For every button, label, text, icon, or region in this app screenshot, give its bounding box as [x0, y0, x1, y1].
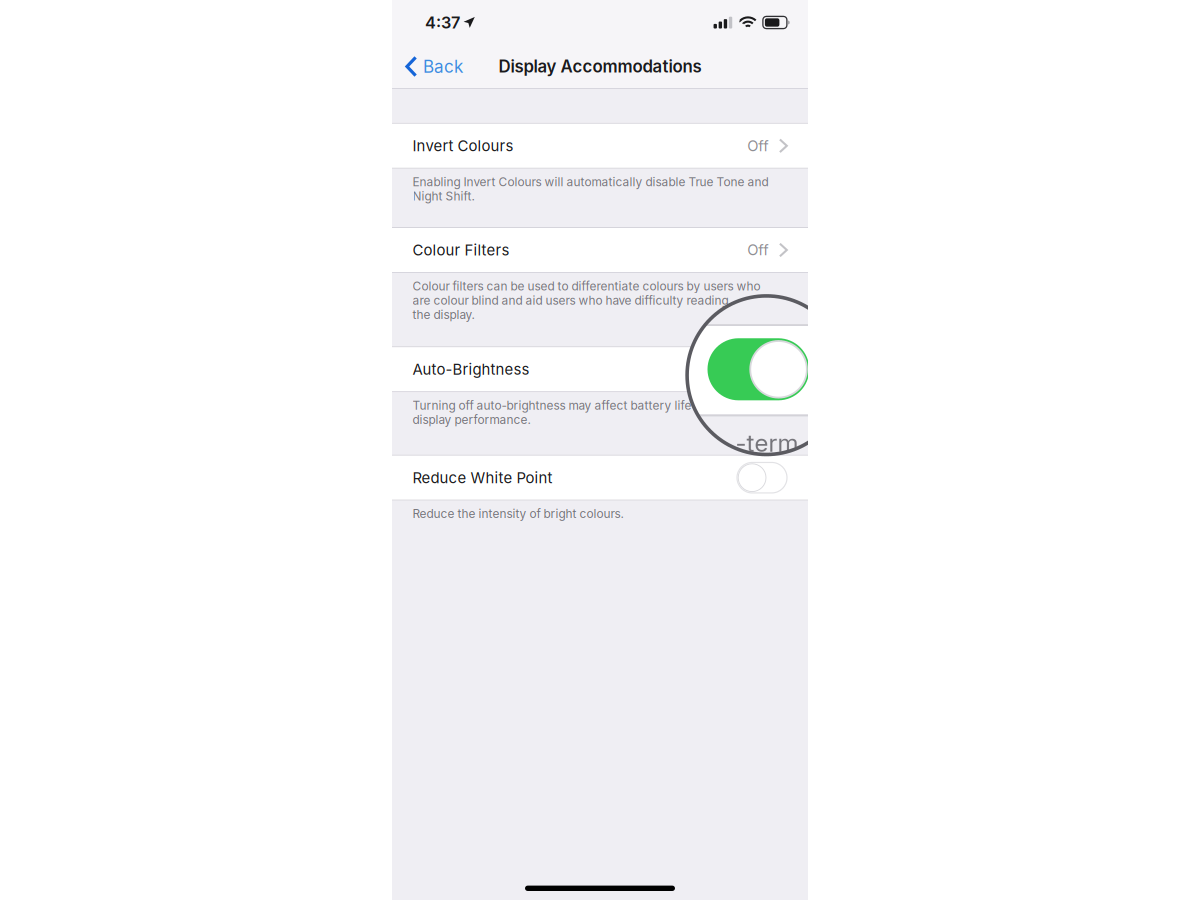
staticText: Invert Colours: [412, 137, 513, 155]
staticText: Reduce the intensity of bright colours.: [412, 507, 623, 521]
staticText: Enabling Invert Colours will automatical…: [412, 175, 768, 203]
button[interactable]: Auto-Brightness: [392, 347, 808, 391]
staticText: Turning off auto-brightness may affect b…: [412, 398, 773, 427]
staticText: Colour Filters: [412, 241, 509, 259]
staticText: Display Accommodations: [498, 56, 701, 77]
staticText: 4:37: [425, 13, 460, 32]
button[interactable]: Colour Filters: [392, 228, 808, 272]
button[interactable]: Reduce White Point: [392, 456, 808, 500]
staticText: Reduce White Point: [412, 469, 552, 487]
staticText: Colour filters can be used to differenti…: [412, 279, 760, 322]
staticText: Back: [423, 56, 463, 77]
staticText: Auto-Brightness: [412, 360, 529, 378]
button[interactable]: Back: [392, 45, 473, 88]
staticText: -term: [736, 428, 799, 457]
staticText: Off: [747, 241, 768, 259]
staticText: Off: [747, 137, 768, 155]
button[interactable]: Invert Colours: [392, 124, 808, 168]
